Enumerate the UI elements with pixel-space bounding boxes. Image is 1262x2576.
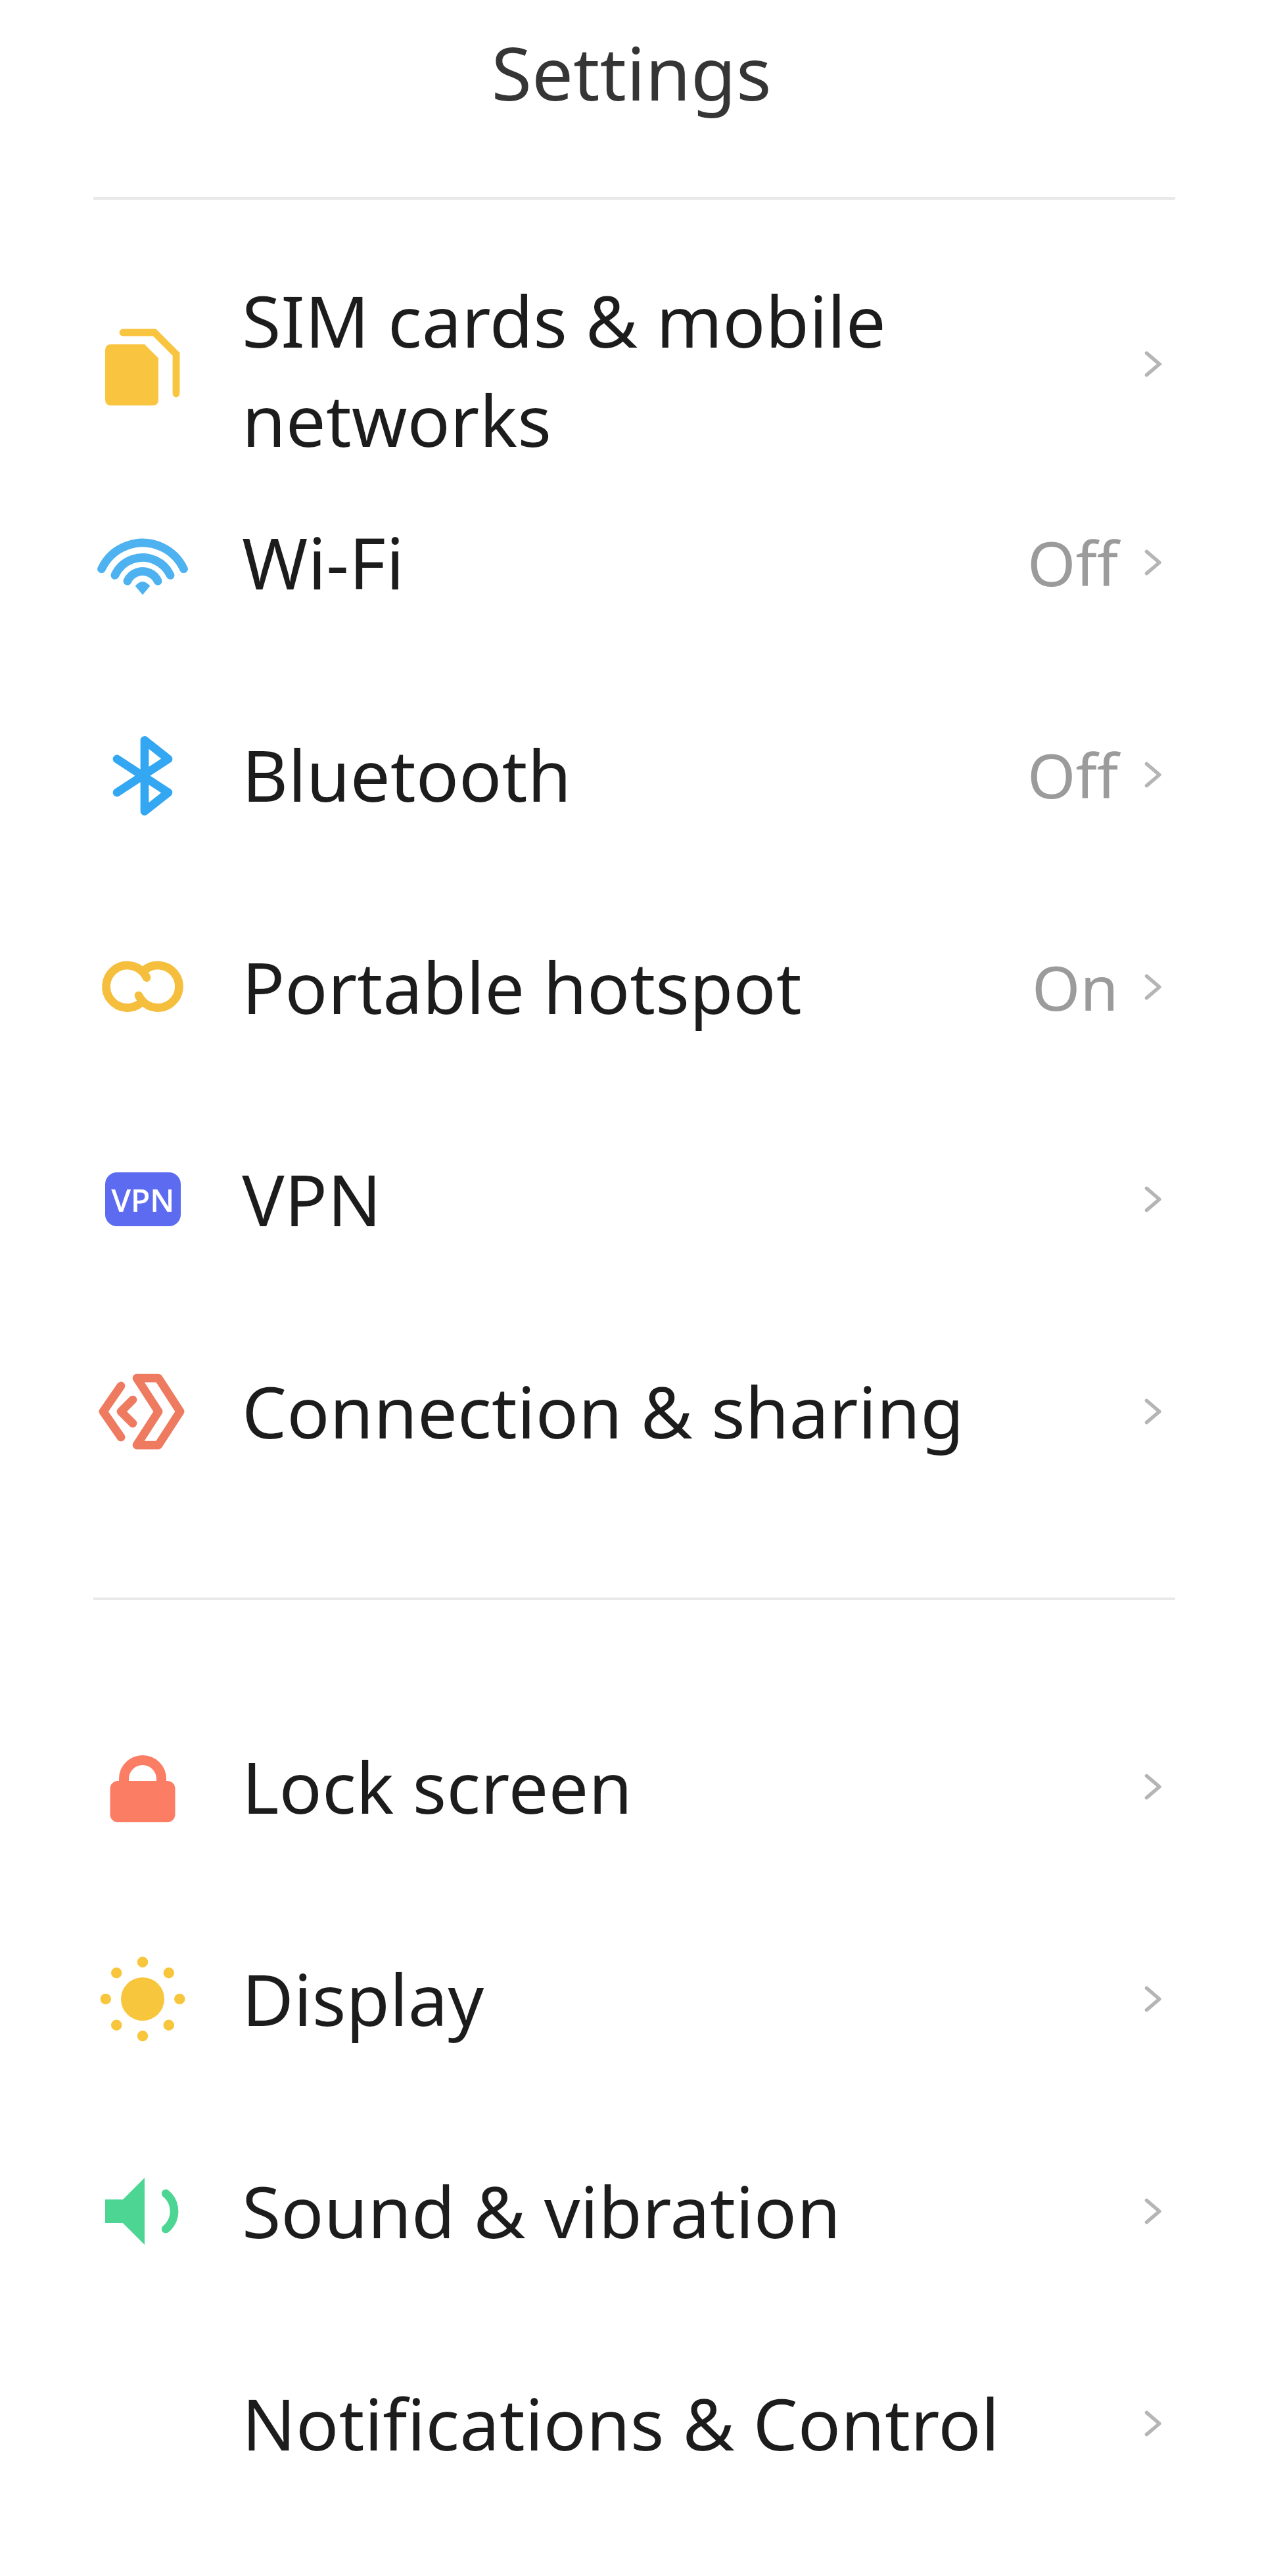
staticText: VPN bbox=[242, 1151, 1136, 1247]
staticText: Display bbox=[242, 1950, 1136, 2047]
button[interactable]: Sound & vibration bbox=[0, 2105, 1262, 2317]
staticText: Settings bbox=[491, 22, 772, 122]
button[interactable]: Notifications & Control bbox=[0, 2317, 1262, 2529]
button[interactable]: Wi-Fi bbox=[0, 456, 1262, 668]
staticText: Wi-Fi bbox=[242, 514, 1027, 610]
staticText: Off bbox=[1027, 733, 1119, 817]
staticText: VPN bbox=[111, 1178, 175, 1221]
button[interactable]: Display bbox=[0, 1893, 1262, 2105]
staticText: Notifications & Control bbox=[242, 2375, 1136, 2472]
staticText: Bluetooth bbox=[242, 726, 1027, 823]
staticText: Connection & sharing bbox=[242, 1363, 1136, 1460]
button[interactable]: Portable hotspot bbox=[0, 881, 1262, 1093]
button[interactable]: VPN bbox=[0, 1093, 1262, 1305]
staticText: On bbox=[1032, 945, 1119, 1029]
staticText: Off bbox=[1027, 520, 1119, 605]
staticText: Sound & vibration bbox=[242, 2163, 1136, 2259]
staticText: Portable hotspot bbox=[242, 938, 1032, 1035]
button[interactable]: SIM cards & mobile networks bbox=[0, 272, 1262, 456]
button[interactable]: Bluetooth bbox=[0, 668, 1262, 881]
staticText: Lock screen bbox=[242, 1738, 1136, 1835]
staticText: SIM cards & mobile networks bbox=[242, 272, 1136, 456]
button[interactable]: Lock screen bbox=[0, 1680, 1262, 1893]
button[interactable]: Connection & sharing bbox=[0, 1305, 1262, 1517]
